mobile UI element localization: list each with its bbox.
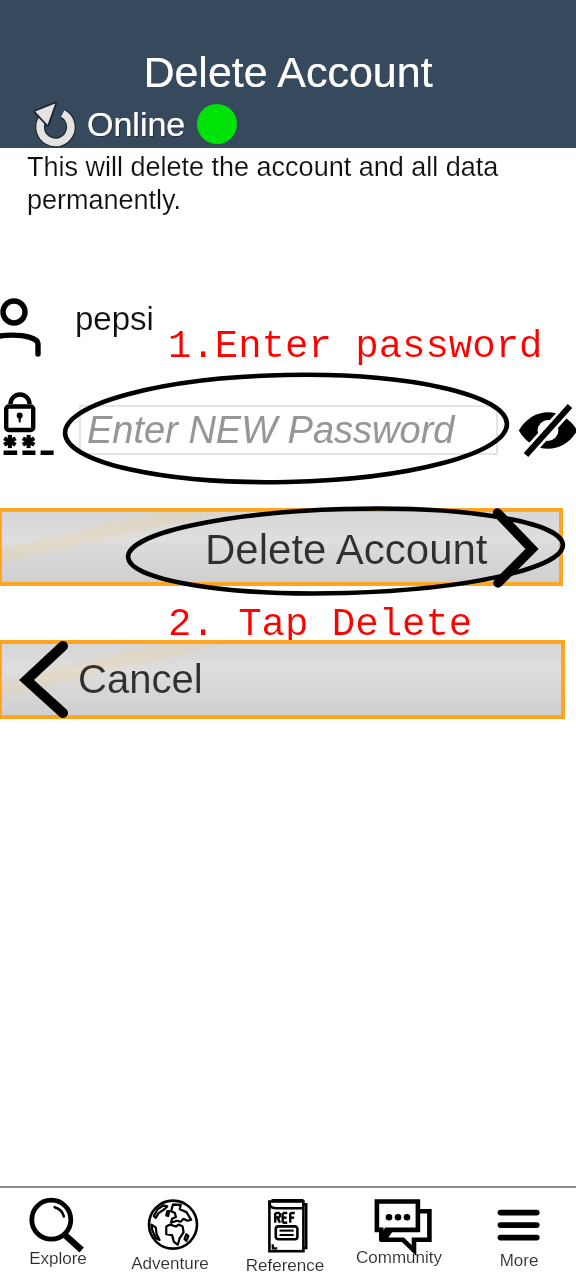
staticText: 1.Enter password	[168, 325, 543, 369]
button[interactable]: Show password	[515, 404, 576, 470]
staticText: Reference	[215, 1256, 355, 1275]
button[interactable]: Cancel	[0, 642, 563, 717]
button[interactable]	[466, 1190, 572, 1280]
staticText: Delete Account	[205, 526, 488, 573]
button[interactable]	[120, 1190, 207, 1280]
staticText: Cancel	[78, 657, 203, 702]
staticText: Online	[88, 106, 187, 144]
staticText: Explore	[0, 1249, 128, 1268]
button[interactable]	[240, 1190, 336, 1280]
staticText: This will delete the account and all dat…	[27, 152, 507, 215]
button[interactable]	[11, 1190, 111, 1280]
staticText: pepsi	[75, 300, 154, 337]
staticText: Online	[87, 105, 186, 143]
button[interactable]	[350, 1190, 455, 1280]
staticText: Delete Account	[0, 48, 576, 96]
staticText: Adventure	[100, 1254, 240, 1273]
staticText: Community	[329, 1248, 469, 1267]
staticText: Enter NEW Password	[87, 409, 455, 451]
staticText: 2. Tap Delete	[168, 603, 473, 647]
staticText: More	[449, 1251, 576, 1270]
button[interactable]: Enter NEW Password	[80, 406, 497, 454]
button[interactable]: Refresh connection status	[33, 102, 77, 146]
button[interactable]: Delete Account	[0, 510, 561, 584]
